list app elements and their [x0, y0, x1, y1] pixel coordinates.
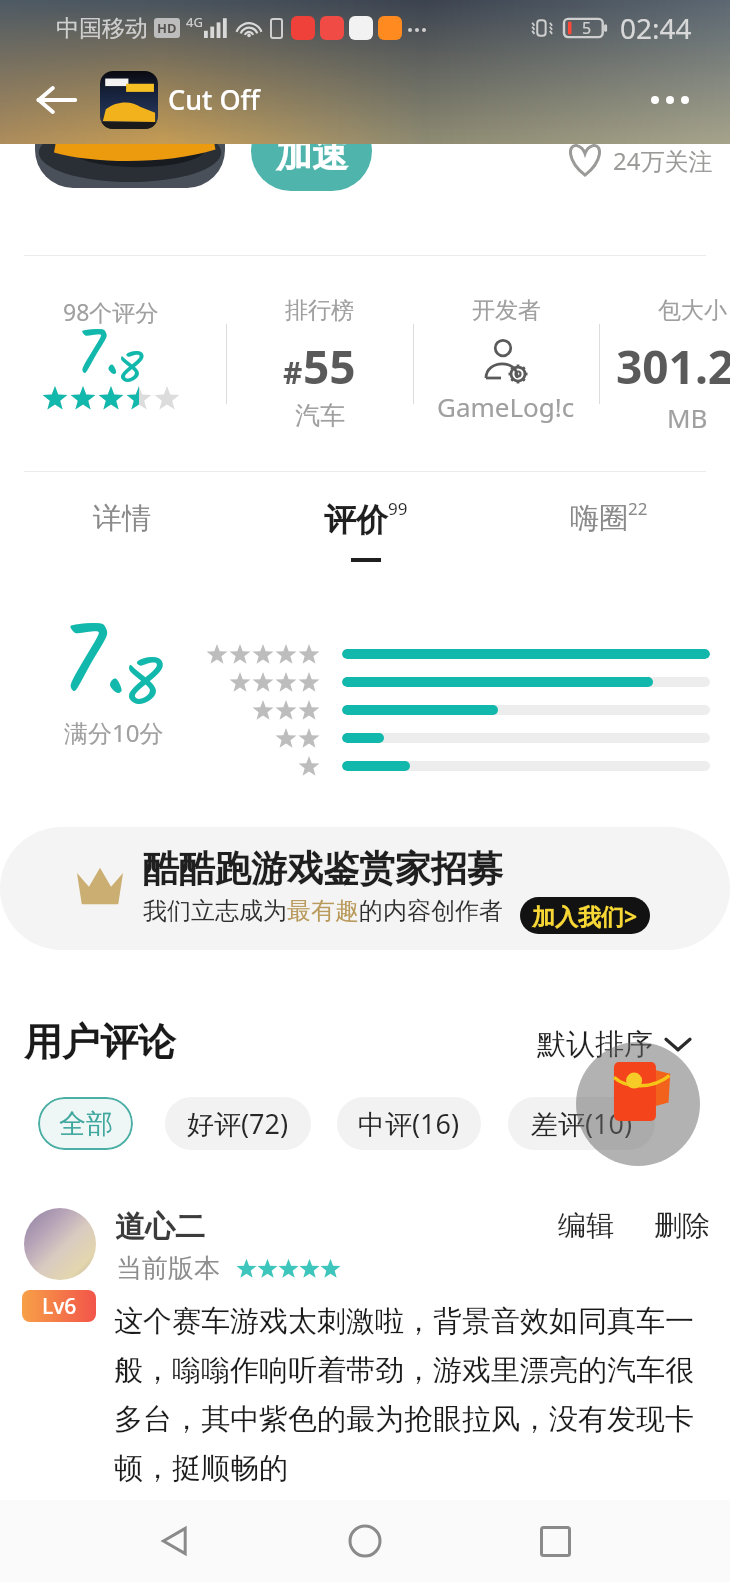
staticText: 酷酷跑游戏鉴赏家招募 — [143, 846, 503, 891]
staticText: 98个评分 — [63, 296, 159, 327]
button[interactable]: 编辑 — [558, 1208, 614, 1243]
staticText: GameLog!c — [437, 389, 575, 424]
button[interactable]: 详情 — [0, 478, 244, 588]
staticText: 嗨圈 — [570, 500, 628, 537]
staticText: 默认排序 — [537, 1026, 653, 1063]
staticText: 满分10分 — [64, 716, 164, 749]
staticText: 的内容创作者 — [359, 896, 503, 926]
button[interactable]: Red packet gift — [576, 1042, 700, 1166]
button[interactable]: 评价 — [244, 478, 487, 588]
staticText: # — [283, 352, 303, 393]
staticText: 用户评论 — [24, 1018, 176, 1066]
button[interactable]: 全部 — [38, 1097, 133, 1150]
staticText: 开发者 — [472, 296, 541, 325]
staticText: 中国移动 — [56, 14, 148, 43]
staticText: 差评(10) — [531, 1105, 633, 1142]
button[interactable]: 差评(10) — [508, 1097, 655, 1150]
staticText: 详情 — [93, 500, 151, 537]
button[interactable]: 加速 — [251, 110, 372, 191]
staticText: Cut Off — [168, 81, 260, 118]
button[interactable]: 删除 — [654, 1208, 710, 1243]
staticText: 7. — [61, 591, 128, 742]
staticText: 99 — [388, 497, 408, 520]
button[interactable]: More options — [638, 68, 702, 132]
button[interactable]: Home — [330, 1506, 400, 1576]
button[interactable]: Back — [24, 68, 88, 132]
staticText: 24万关注 — [613, 144, 713, 177]
button[interactable]: 好评(72) — [165, 1097, 311, 1150]
button[interactable]: 嗨圈 — [487, 478, 730, 588]
staticText: 道心二 — [115, 1208, 205, 1246]
staticText: HD — [157, 19, 177, 37]
staticText: 加入我们> — [532, 900, 638, 931]
staticText: 好评(72) — [187, 1105, 289, 1142]
button[interactable]: 中评(16) — [337, 1097, 481, 1150]
staticText: 301.2 — [616, 335, 730, 398]
staticText: 当前版本 — [116, 1252, 220, 1285]
staticText: 排行榜 — [285, 296, 354, 325]
button[interactable]: Back — [140, 1506, 210, 1576]
staticText: 4G — [186, 13, 203, 31]
staticText: 5 — [582, 17, 592, 39]
staticText: 这个赛车游戏太刺激啦，背景音效如同真车一般，嗡嗡作响听着带劲，游戏里漂亮的汽车很… — [114, 1303, 714, 1486]
button[interactable]: 默认排序 — [537, 1026, 691, 1063]
staticText: 02:44 — [620, 9, 692, 47]
staticText: 包大小 — [658, 296, 727, 325]
staticText: 汽车 — [295, 400, 345, 431]
staticText: 我们立志成为 — [143, 896, 287, 926]
staticText: 评价 — [324, 500, 388, 540]
staticText: Lv6 — [42, 1292, 77, 1321]
button[interactable]: Recent apps — [520, 1506, 590, 1576]
staticText: MB — [667, 400, 708, 435]
staticText: 8 — [117, 336, 144, 406]
staticText: 最有趣 — [287, 896, 359, 926]
staticText: 加速 — [276, 132, 348, 177]
staticText: 全部 — [59, 1107, 113, 1141]
staticText: 22 — [628, 497, 648, 520]
button[interactable]: 酷酷跑游戏鉴赏家招募 — [0, 827, 730, 950]
staticText: 8 — [123, 635, 163, 740]
staticText: 7. — [76, 307, 120, 407]
button[interactable]: 加入我们> — [520, 897, 650, 934]
staticText: 55 — [303, 335, 356, 398]
staticText: 中评(16) — [358, 1105, 460, 1142]
